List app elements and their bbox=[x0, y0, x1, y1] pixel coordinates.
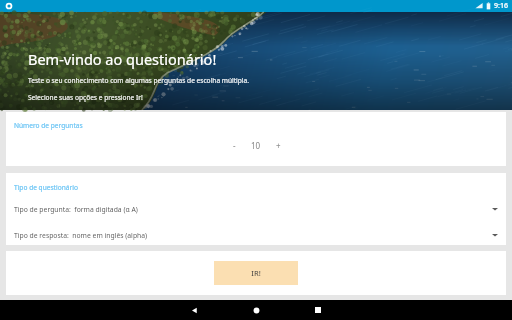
staticText: Tipo de pergunta: forma digitada (α A) bbox=[14, 205, 138, 214]
staticText: Número de perguntas bbox=[14, 121, 83, 130]
button[interactable]: Aumentar número de perguntas bbox=[269, 136, 287, 154]
button[interactable]: Diminuir número de perguntas bbox=[225, 136, 243, 154]
staticText: Tipo de questionário bbox=[14, 183, 78, 192]
staticText: + bbox=[276, 140, 281, 151]
button[interactable]: Tipo de pergunta: forma digitada (α A) bbox=[6, 202, 506, 216]
staticText: IR! bbox=[251, 268, 261, 278]
staticText: Bem-vindo ao questionário! bbox=[28, 49, 217, 69]
button[interactable]: Voltar bbox=[174, 300, 214, 320]
staticText: Teste o seu conhecimento com algumas per… bbox=[28, 76, 250, 85]
staticText: Selecione suas opções e pressione Ir! bbox=[28, 93, 143, 102]
button[interactable]: Recentes bbox=[298, 300, 338, 320]
staticText: 9:16 bbox=[494, 1, 508, 11]
staticText: - bbox=[233, 140, 236, 151]
staticText: 10 bbox=[251, 140, 261, 151]
button[interactable]: IR! bbox=[214, 261, 298, 285]
staticText: Tipo de resposta: nome em inglês (alpha) bbox=[14, 231, 148, 240]
button[interactable]: Tipo de resposta: nome em inglês (alpha) bbox=[6, 228, 506, 242]
button[interactable]: Início bbox=[236, 300, 276, 320]
